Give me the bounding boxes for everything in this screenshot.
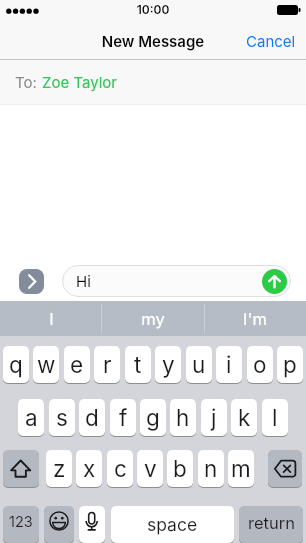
button[interactable]: k [231, 399, 257, 436]
button[interactable]: d [79, 399, 105, 436]
staticText: k [238, 404, 251, 431]
button[interactable] [262, 269, 287, 294]
staticText: w [37, 351, 56, 378]
staticText: f [119, 404, 128, 431]
button[interactable]: q [3, 346, 29, 383]
button[interactable]: o [247, 346, 273, 383]
staticText: o [253, 351, 267, 378]
staticText: e [70, 351, 84, 378]
button[interactable]: a [18, 399, 44, 436]
button[interactable] [19, 269, 44, 294]
button[interactable]: t [125, 346, 151, 383]
staticText: l [272, 404, 278, 431]
button[interactable]: f [110, 399, 136, 436]
staticText: Cancel [246, 32, 296, 50]
staticText: j [211, 404, 217, 431]
button[interactable]: b [167, 450, 193, 487]
staticText: b [173, 455, 187, 482]
button[interactable]: I [0, 301, 102, 336]
button[interactable] [79, 506, 105, 543]
staticText: Hi [76, 272, 91, 290]
staticText: To: [15, 73, 42, 91]
button[interactable]: i [216, 346, 242, 383]
staticText: I [49, 309, 54, 329]
button[interactable]: e [64, 346, 90, 383]
button[interactable]: I'm [204, 301, 306, 336]
staticText: New Message [0, 32, 306, 50]
button[interactable]: l [262, 399, 288, 436]
button[interactable]: Cancel [240, 28, 306, 54]
button[interactable]: w [33, 346, 59, 383]
staticText: u [192, 351, 206, 378]
button[interactable]: Hi [62, 265, 291, 297]
button[interactable]: z [46, 450, 72, 487]
staticText: a [25, 404, 38, 431]
staticText: Zoe Taylor [42, 73, 117, 91]
button[interactable]: m [228, 450, 254, 487]
staticText: y [162, 351, 175, 378]
staticText: m [231, 455, 251, 482]
staticText: x [83, 455, 96, 482]
staticText: 10:00 [0, 2, 306, 17]
staticText: t [134, 351, 142, 378]
button[interactable]: p [277, 346, 303, 383]
button[interactable]: my [102, 301, 204, 336]
button[interactable]: h [170, 399, 196, 436]
staticText: I'm [243, 309, 267, 329]
button[interactable]: s [49, 399, 75, 436]
button[interactable]: return [239, 506, 303, 543]
staticText: g [146, 404, 160, 431]
button[interactable]: c [107, 450, 133, 487]
staticText: space [147, 514, 198, 535]
staticText: my [141, 309, 165, 329]
button[interactable]: u [186, 346, 212, 383]
button[interactable]: g [140, 399, 166, 436]
staticText: r [103, 351, 112, 378]
staticText: 123 [9, 513, 33, 531]
staticText: n [204, 455, 218, 482]
staticText: c [114, 455, 127, 482]
button[interactable]: j [201, 399, 227, 436]
button[interactable]: r [94, 346, 120, 383]
button[interactable]: v [137, 450, 163, 487]
button[interactable] [44, 506, 74, 543]
staticText: return [248, 513, 295, 533]
button[interactable]: To: [0, 60, 306, 104]
button[interactable]: n [198, 450, 224, 487]
button[interactable] [268, 450, 302, 487]
staticText: v [144, 455, 157, 482]
staticText: p [283, 351, 297, 378]
button[interactable]: y [155, 346, 181, 383]
staticText: h [176, 404, 190, 431]
button[interactable]: space [111, 506, 234, 543]
staticText: q [9, 351, 23, 378]
button[interactable]: x [76, 450, 102, 487]
button[interactable] [3, 450, 39, 487]
button[interactable]: 123 [3, 506, 39, 543]
staticText: d [85, 404, 99, 431]
staticText: z [53, 455, 66, 482]
staticText: i [226, 351, 232, 378]
staticText: s [56, 404, 68, 431]
